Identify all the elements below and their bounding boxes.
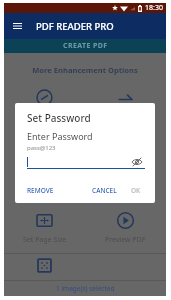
button[interactable]: CANCEL	[90, 184, 119, 197]
button[interactable]: CREATE PDF	[4, 39, 166, 53]
staticText: Set Password	[27, 111, 91, 125]
staticText: Preview PDF	[105, 235, 146, 245]
button[interactable]: Compress image	[4, 257, 85, 280]
button[interactable]: Set Page Size	[4, 212, 85, 245]
staticText: CANCEL	[92, 186, 117, 195]
staticText: Enter Password	[27, 130, 93, 142]
button[interactable]: Rearrange Pages	[85, 89, 166, 122]
button[interactable]: Add Watermark	[4, 89, 85, 122]
staticText: Set Page Size	[23, 235, 67, 245]
staticText: More Enhancement Options	[4, 65, 166, 75]
button[interactable]: Open navigation menu	[4, 13, 30, 39]
button[interactable]: Toggle password visibility	[131, 156, 143, 168]
staticText: PDF READER PRO	[36, 20, 114, 33]
staticText: OK	[131, 186, 141, 195]
button[interactable]: REMOVE	[25, 184, 56, 197]
button[interactable]: Preview PDF	[85, 212, 166, 245]
staticText: CREATE PDF	[63, 41, 108, 51]
staticText: Add Watermark	[19, 112, 71, 122]
button[interactable]: OK	[129, 184, 143, 197]
staticText: 18:30	[145, 3, 163, 13]
staticText: pass@123	[27, 144, 56, 152]
staticText: REMOVE	[27, 186, 54, 195]
staticText: 1 image(s) selected	[56, 284, 115, 293]
